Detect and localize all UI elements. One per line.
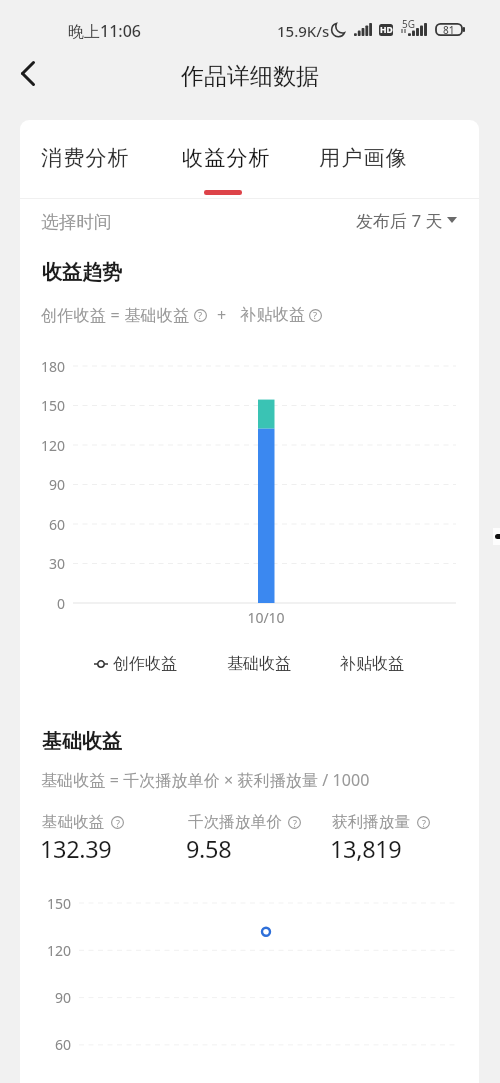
staticText: 150: [20, 396, 65, 415]
staticText: 基础收益 = 千次播放单价 × 获利播放量 / 1000: [41, 769, 370, 791]
staticText: 81: [443, 23, 455, 36]
button[interactable]: 基础收益: [227, 654, 291, 674]
button[interactable]: 用户画像: [305, 145, 421, 209]
button[interactable]: 消费分析: [27, 145, 143, 209]
staticText: 补贴收益: [240, 305, 305, 325]
staticText: 发布后 7 天: [356, 209, 443, 232]
staticText: 150: [24, 894, 71, 913]
staticText: 作品详细数据: [181, 62, 319, 91]
button[interactable]: Back: [2, 48, 53, 99]
button[interactable]: 收益分析: [168, 145, 284, 209]
button[interactable]: 选择时间: [31, 206, 121, 238]
staticText: ?: [116, 817, 120, 829]
staticText: ?: [422, 817, 426, 829]
staticText: 创作收益: [113, 654, 177, 674]
staticText: 基础收益: [227, 654, 291, 674]
staticText: 120: [20, 436, 65, 455]
staticText: 60: [24, 1035, 71, 1054]
staticText: 13,819: [330, 833, 402, 865]
staticText: 基础收益: [42, 729, 122, 754]
staticText: 补贴收益: [340, 654, 404, 674]
staticText: 0: [20, 594, 65, 613]
staticText: 120: [24, 941, 71, 960]
staticText: 创作收益 = 基础收益: [41, 304, 190, 326]
staticText: 获利播放量: [332, 812, 411, 832]
staticText: 消费分析: [41, 145, 130, 171]
staticText: 60: [20, 515, 65, 534]
staticText: 15.9K/s: [277, 21, 330, 41]
staticText: 晚上11:06: [68, 20, 141, 42]
staticText: 收益分析: [182, 145, 271, 171]
staticText: ?: [313, 309, 318, 322]
staticText: 132.39: [40, 833, 112, 865]
staticText: 收益趋势: [42, 260, 122, 285]
staticText: 180: [20, 357, 65, 376]
staticText: 千次播放单价: [188, 812, 282, 832]
staticText: +: [217, 304, 227, 326]
staticText: 选择时间: [41, 211, 112, 233]
staticText: 5G: [402, 17, 415, 31]
staticText: ?: [293, 817, 297, 829]
staticText: 90: [20, 475, 65, 494]
staticText: 基础收益: [42, 812, 105, 832]
button[interactable]: 发布后 7 天: [356, 202, 457, 238]
staticText: 9.58: [186, 833, 232, 865]
staticText: 30: [20, 554, 65, 573]
staticText: 用户画像: [319, 145, 408, 171]
staticText: 10/10: [242, 608, 290, 627]
staticText: HD: [380, 24, 393, 36]
button[interactable]: 创作收益: [94, 654, 177, 674]
staticText: 90: [24, 988, 71, 1007]
button[interactable]: 补贴收益: [340, 654, 404, 674]
staticText: ?: [198, 309, 203, 322]
